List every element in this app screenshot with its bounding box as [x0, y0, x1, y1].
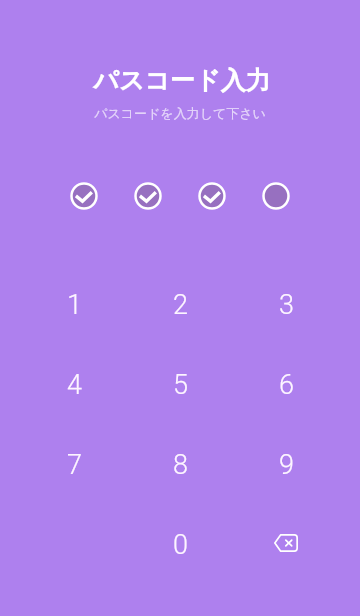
- staticText: 7: [67, 449, 82, 481]
- staticText: 9: [279, 449, 294, 481]
- staticText: パスコード入力: [93, 65, 271, 96]
- staticText: 6: [279, 369, 294, 401]
- button[interactable]: 5: [127, 346, 233, 426]
- staticText: 4: [67, 369, 82, 401]
- button[interactable]: 3: [233, 266, 339, 346]
- button[interactable]: 8: [127, 426, 233, 506]
- staticText: 3: [279, 289, 294, 321]
- staticText: 0: [173, 529, 188, 561]
- button[interactable]: 6: [233, 346, 339, 426]
- staticText: 2: [173, 289, 188, 321]
- staticText: パスコードを入力して下さい: [94, 105, 266, 121]
- button[interactable]: 7: [21, 426, 127, 506]
- button[interactable]: Backspace: [233, 506, 339, 586]
- button[interactable]: 2: [127, 266, 233, 346]
- button[interactable]: 4: [21, 346, 127, 426]
- staticText: 8: [173, 449, 188, 481]
- button[interactable]: 0: [127, 506, 233, 586]
- button[interactable]: 1: [21, 266, 127, 346]
- staticText: 1: [67, 289, 82, 321]
- button[interactable]: 9: [233, 426, 339, 506]
- staticText: 5: [173, 369, 188, 401]
